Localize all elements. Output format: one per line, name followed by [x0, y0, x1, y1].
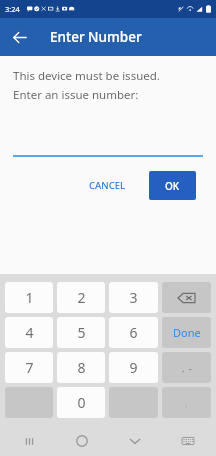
staticText: Enter Number [50, 28, 142, 46]
button[interactable]: 2 [57, 282, 105, 313]
button[interactable]: Hide keyboard [122, 428, 148, 454]
button[interactable]: done [162, 317, 211, 348]
button[interactable]: 4 [5, 317, 53, 348]
button[interactable]: 3 [109, 282, 158, 313]
button[interactable]: Backspace [162, 282, 211, 313]
button[interactable]: 9 [109, 352, 158, 383]
button[interactable]: Back [5, 23, 33, 51]
staticText: Done [173, 325, 201, 340]
staticText: 8 [77, 358, 86, 377]
staticText: 0 [77, 393, 86, 412]
staticText: Enter an issue number: [13, 87, 139, 103]
staticText: , [185, 396, 188, 410]
staticText: CANCEL [89, 179, 126, 192]
button[interactable]: 6 [109, 317, 158, 348]
button[interactable]: 7 [5, 352, 53, 383]
button[interactable]: CANCEL [80, 172, 135, 199]
button[interactable]: Recents [16, 428, 42, 454]
button[interactable]: OK [149, 171, 196, 200]
staticText: 3:24 [5, 4, 20, 14]
staticText: 7 [25, 358, 34, 377]
staticText: 9 [129, 358, 138, 377]
button[interactable]: 1 [5, 282, 53, 313]
staticText: . - [182, 362, 192, 374]
staticText: 1 [25, 288, 34, 307]
button[interactable]: 8 [57, 352, 105, 383]
staticText: This device must be issued. [13, 68, 160, 84]
staticText: 2 [77, 288, 86, 307]
staticText: 3 [129, 288, 138, 307]
staticText: 6 [129, 323, 138, 342]
button[interactable]: Home [69, 428, 95, 454]
button[interactable]: 5 [57, 317, 105, 348]
staticText: 4 [25, 323, 34, 342]
staticText: 5 [77, 323, 86, 342]
button[interactable]: 0 [57, 387, 105, 418]
button[interactable]: Change keyboard [175, 428, 201, 454]
staticText: OK [165, 179, 180, 193]
